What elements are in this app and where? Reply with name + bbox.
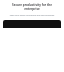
staticText: Secure productivity for the enterprise	[4, 3, 60, 11]
staticText: Keep your teams connected and data prote…	[6, 14, 58, 17]
